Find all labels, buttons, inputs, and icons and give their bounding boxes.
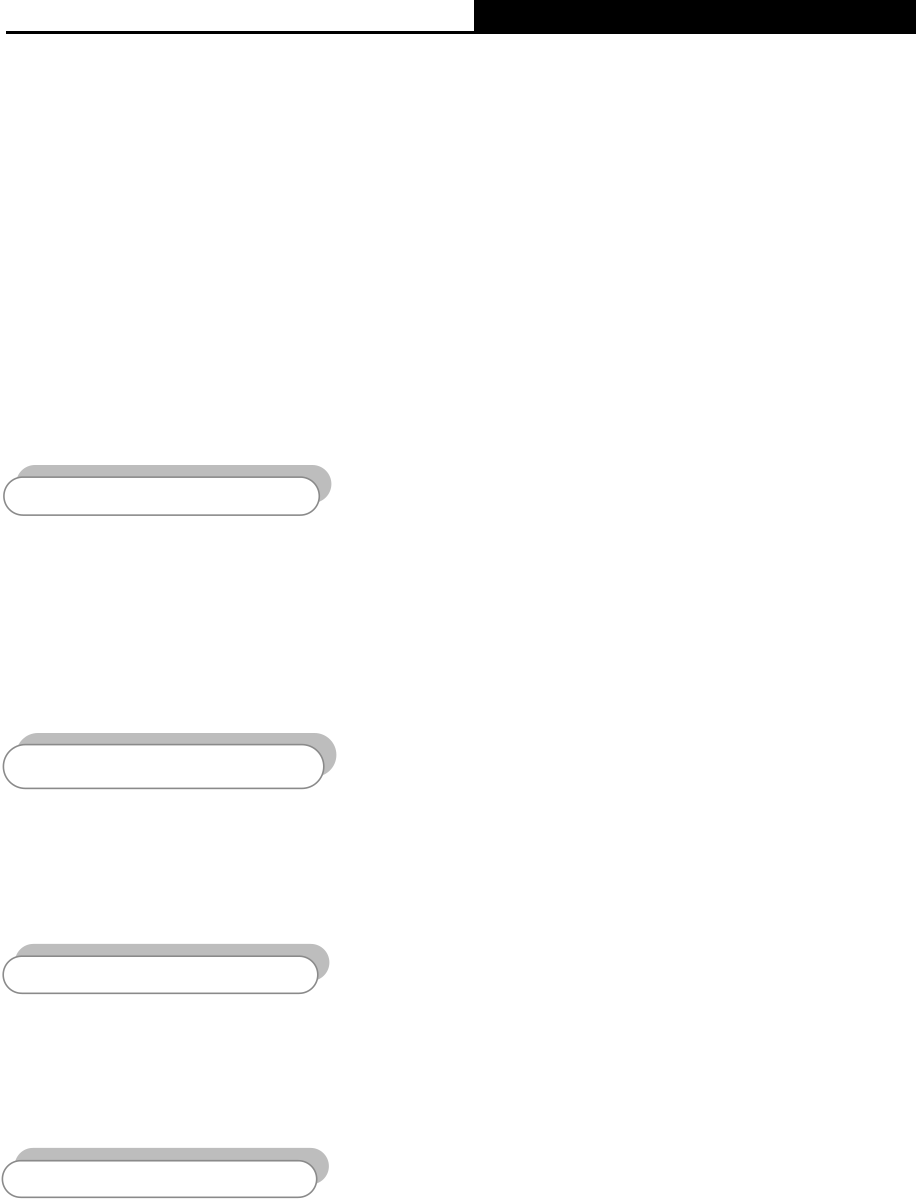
button[interactable]: Field two: [3, 733, 336, 788]
button[interactable]: Field one: [4, 465, 331, 515]
button[interactable]: Field four: [2, 1148, 329, 1197]
button[interactable]: Field three: [3, 944, 329, 993]
